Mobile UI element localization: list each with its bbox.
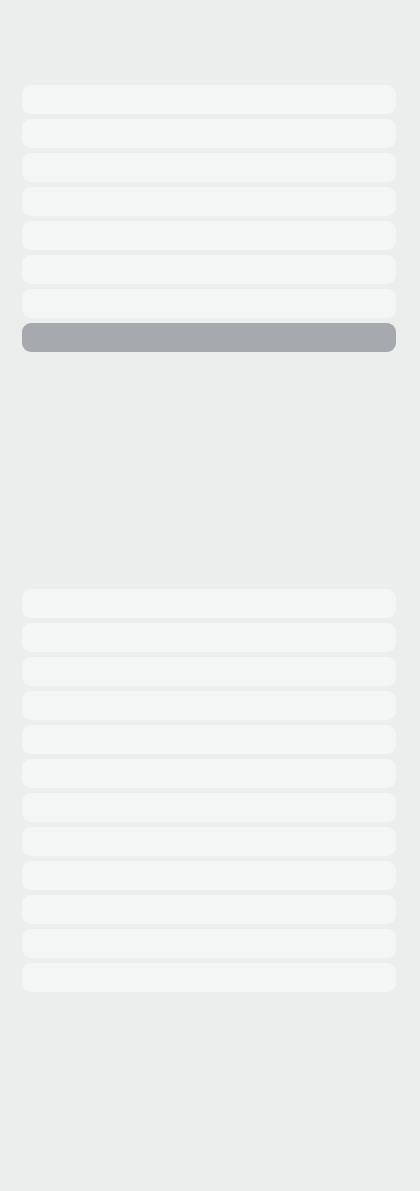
button[interactable]: Selected item [22,323,396,352]
